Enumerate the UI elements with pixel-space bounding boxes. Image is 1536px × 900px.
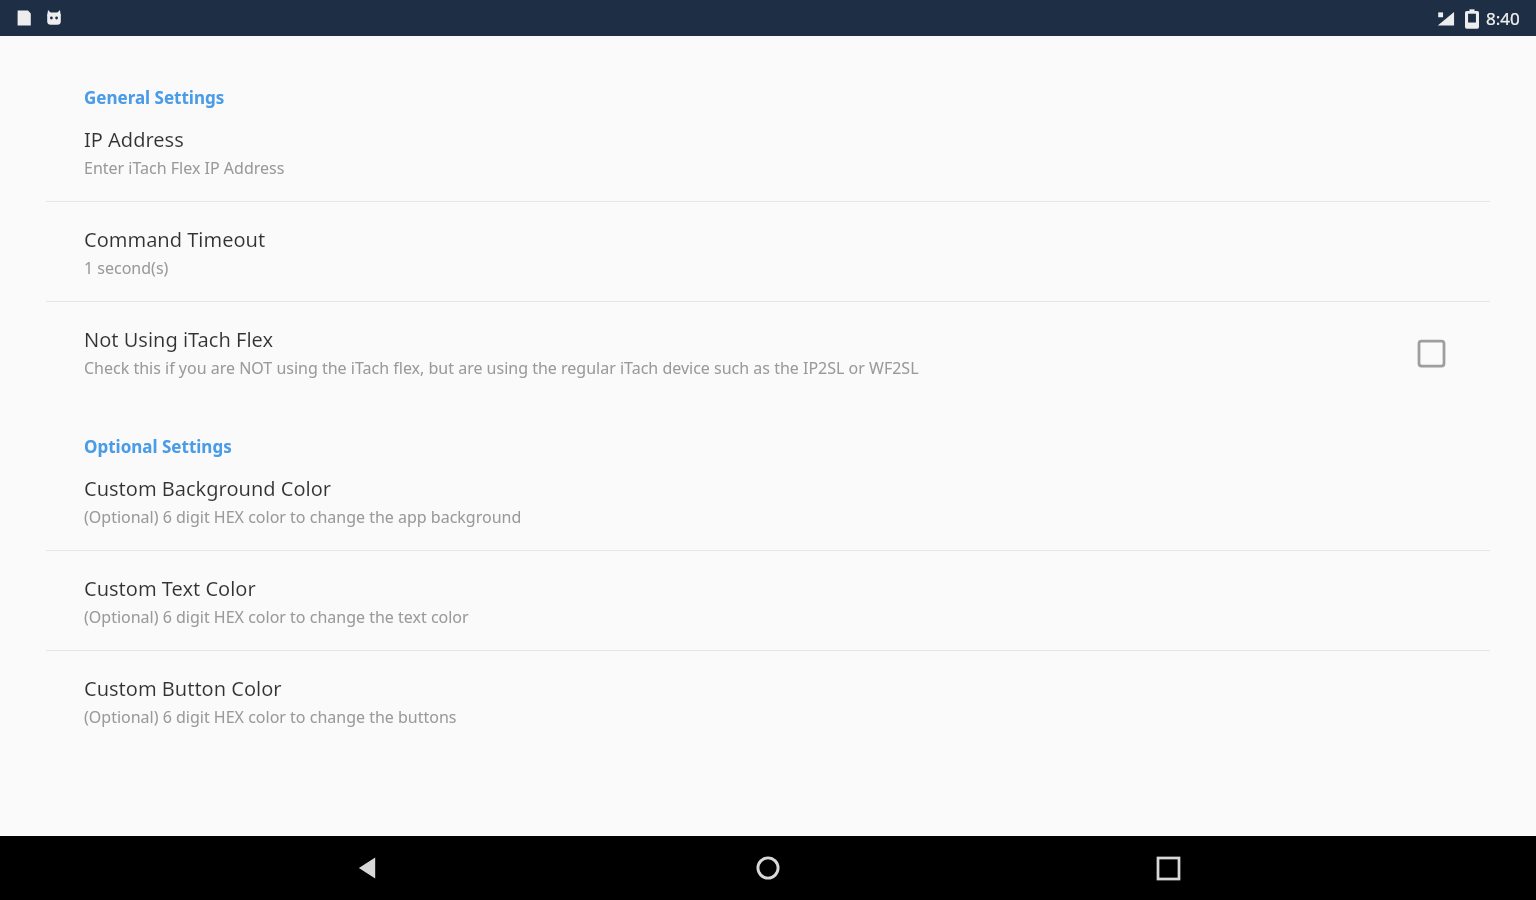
button[interactable]: Not Using iTach Flex checkbox [1410,332,1452,374]
staticText: Not Using iTach Flex [84,326,273,353]
staticText: Custom Text Color [84,575,256,602]
button[interactable]: Custom Background Color [0,475,1536,550]
staticText: Enter iTach Flex IP Address [84,157,285,179]
staticText: Optional Settings [84,435,232,458]
staticText: Check this if you are NOT using the iTac… [84,357,919,379]
staticText: (Optional) 6 digit HEX color to change t… [84,506,522,528]
button[interactable]: Not Using iTach Flex [0,302,1536,401]
button[interactable]: Command Timeout [0,202,1536,301]
button[interactable]: Custom Button Color [0,651,1536,750]
button[interactable]: IP Address [0,126,1536,201]
button[interactable]: Recent apps [1136,836,1200,900]
staticText: IP Address [84,126,184,153]
staticText: Custom Button Color [84,675,282,702]
staticText: (Optional) 6 digit HEX color to change t… [84,706,457,728]
staticText: (Optional) 6 digit HEX color to change t… [84,606,469,628]
staticText: General Settings [84,86,225,109]
staticText: 8:40 [1486,7,1520,30]
button[interactable]: Custom Text Color [0,551,1536,650]
button[interactable]: Home [736,836,800,900]
staticText: Custom Background Color [84,475,332,502]
button[interactable]: Back [336,836,400,900]
staticText: 1 second(s) [84,257,169,279]
staticText: Command Timeout [84,226,266,253]
